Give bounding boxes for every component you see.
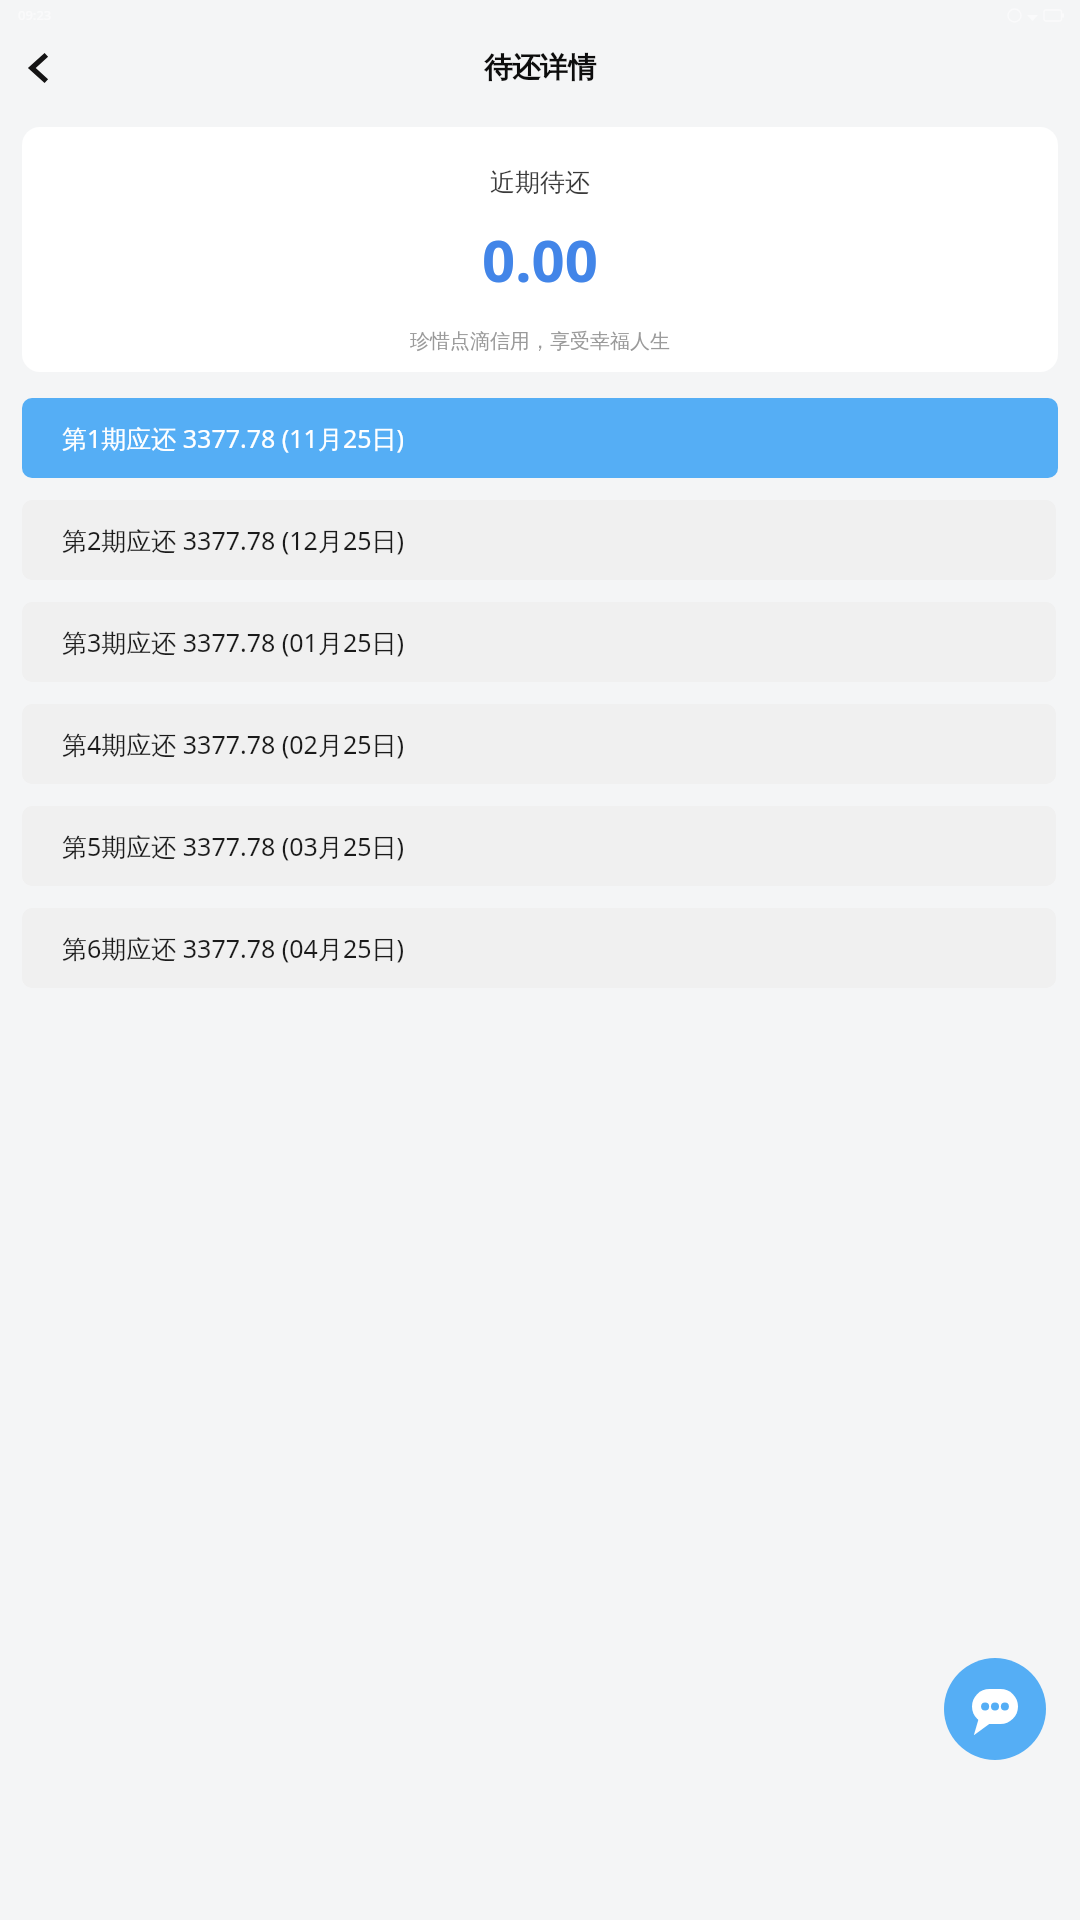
staticText: 第2期应还 3377.78 (12月25日) [62,523,405,557]
button[interactable]: 近期待还 [22,127,1058,372]
button[interactable]: 第4期应还 3377.78 (02月25日) [22,704,1056,784]
button[interactable]: 第5期应还 3377.78 (03月25日) [22,806,1056,886]
staticText: 待还详情 [484,50,596,85]
staticText: 第4期应还 3377.78 (02月25日) [62,727,405,761]
staticText: 第1期应还 3377.78 (11月25日) [62,421,405,455]
button[interactable]: Customer service chat [944,1658,1046,1760]
staticText: 珍惜点滴信用，享受幸福人生 [410,329,670,354]
staticText: 近期待还 [490,167,590,198]
staticText: 0.00 [482,220,598,299]
staticText: 第3期应还 3377.78 (01月25日) [62,625,405,659]
button[interactable]: 第2期应还 3377.78 (12月25日) [22,500,1056,580]
staticText: 第6期应还 3377.78 (04月25日) [62,931,405,965]
button[interactable]: 第1期应还 3377.78 (11月25日) [22,398,1058,478]
staticText: 第5期应还 3377.78 (03月25日) [62,829,405,863]
button[interactable]: 第6期应还 3377.78 (04月25日) [22,908,1056,988]
button[interactable]: 第3期应还 3377.78 (01月25日) [22,602,1056,682]
button[interactable]: Back [8,37,70,99]
